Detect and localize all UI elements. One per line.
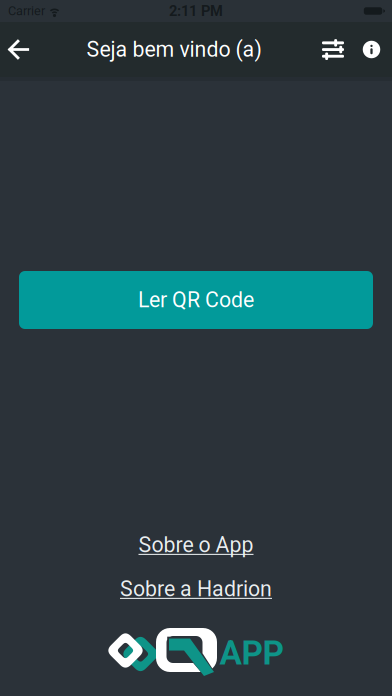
button[interactable]: Filters (315, 22, 351, 77)
staticText: Carrier (8, 4, 45, 18)
button[interactable]: Sobre a Hadrion (120, 576, 272, 602)
staticText: APP (219, 633, 283, 673)
button[interactable]: Ler QR Code (19, 271, 373, 329)
button[interactable]: Sobre o App (138, 532, 253, 558)
staticText: 2:11 PM (169, 2, 223, 20)
staticText: Sobre o App (138, 532, 253, 557)
button[interactable]: Back (0, 22, 37, 77)
staticText: Seja bem vindo (a) (86, 37, 261, 62)
button[interactable]: About this screen (357, 22, 386, 77)
staticText: Ler QR Code (138, 287, 254, 312)
staticText: Sobre a Hadrion (120, 576, 272, 601)
